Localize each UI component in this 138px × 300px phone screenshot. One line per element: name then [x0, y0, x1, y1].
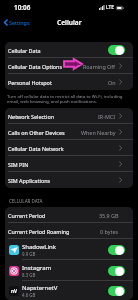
- button[interactable]: Toggle on: [108, 45, 125, 55]
- button[interactable]: Toggle on: [108, 286, 125, 296]
- button[interactable]: Toggle on: [108, 266, 125, 276]
- staticText: Settings: [9, 19, 30, 26]
- staticText: Cellular Data Options: [8, 63, 62, 70]
- button[interactable]: Network Selection: [5, 108, 133, 124]
- staticText: 9.9 GB: [22, 251, 36, 257]
- staticText: 4.6 GB: [22, 292, 36, 298]
- staticText: IR-MCI: [98, 113, 116, 120]
- staticText: Instagram: [22, 264, 52, 272]
- staticText: 0 bytes: [100, 228, 119, 235]
- staticText: On: [108, 79, 116, 86]
- button[interactable]: ShadowLink: [5, 239, 133, 260]
- button[interactable]: Cellular Data Options: [5, 58, 133, 74]
- staticText: SIM PIN: [8, 161, 29, 168]
- staticText: Cellular Data: [8, 47, 41, 54]
- staticText: nV: [11, 288, 17, 294]
- button[interactable]: Current Period: [5, 207, 133, 223]
- button[interactable]: SIM PIN: [5, 156, 133, 172]
- staticText: SIM Applications: [8, 177, 51, 184]
- staticText: Roaming Off: [83, 63, 116, 70]
- button[interactable]: Toggle on: [108, 245, 125, 255]
- button[interactable]: Cellular Data: [5, 42, 133, 58]
- staticText: 35.9 GB: [99, 212, 119, 219]
- button[interactable]: Instagram: [5, 260, 133, 281]
- staticText: Calls on Other Devices: [8, 129, 65, 136]
- staticText: Cellular Data Network: [8, 145, 64, 152]
- staticText: Turn off cellular data to restrict all d…: [7, 93, 131, 104]
- staticText: When Nearby: [81, 129, 116, 136]
- staticText: NapsternetV: [22, 284, 58, 292]
- button[interactable]: Settings: [0, 17, 34, 28]
- staticText: 10:06: [14, 3, 31, 12]
- staticText: 8.3 GB: [22, 272, 36, 278]
- button[interactable]: Calls on Other Devices: [5, 124, 133, 140]
- button[interactable]: Cellular Data Network: [5, 140, 133, 156]
- staticText: ShadowLink: [22, 243, 56, 251]
- staticText: Current Period Roaming: [8, 228, 70, 235]
- staticText: Personal Hotspot: [8, 79, 52, 86]
- button[interactable]: Personal Hotspot: [5, 74, 133, 90]
- staticText: Network Selection: [8, 113, 55, 120]
- staticText: CELLULAR DATA: [9, 198, 43, 204]
- staticText: Cellular: [57, 18, 82, 27]
- button[interactable]: Current Period Roaming: [5, 223, 133, 239]
- button[interactable]: SIM Applications: [5, 172, 133, 188]
- staticText: LTE: [106, 4, 114, 11]
- button[interactable]: nV: [5, 281, 133, 300]
- staticText: Current Period: [8, 212, 46, 219]
